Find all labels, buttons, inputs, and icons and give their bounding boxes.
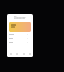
- button[interactable]: Discover: [14, 15, 26, 21]
- staticText: Discover: [14, 16, 26, 20]
- button[interactable]: [7, 36, 33, 40]
- button[interactable]: Search: [14, 51, 19, 56]
- button[interactable]: [9, 22, 31, 32]
- button[interactable]: [7, 32, 33, 36]
- button[interactable]: Home: [8, 51, 13, 56]
- button[interactable]: Profile: [27, 51, 32, 56]
- button[interactable]: [7, 40, 33, 44]
- button[interactable]: Saved: [21, 51, 26, 56]
